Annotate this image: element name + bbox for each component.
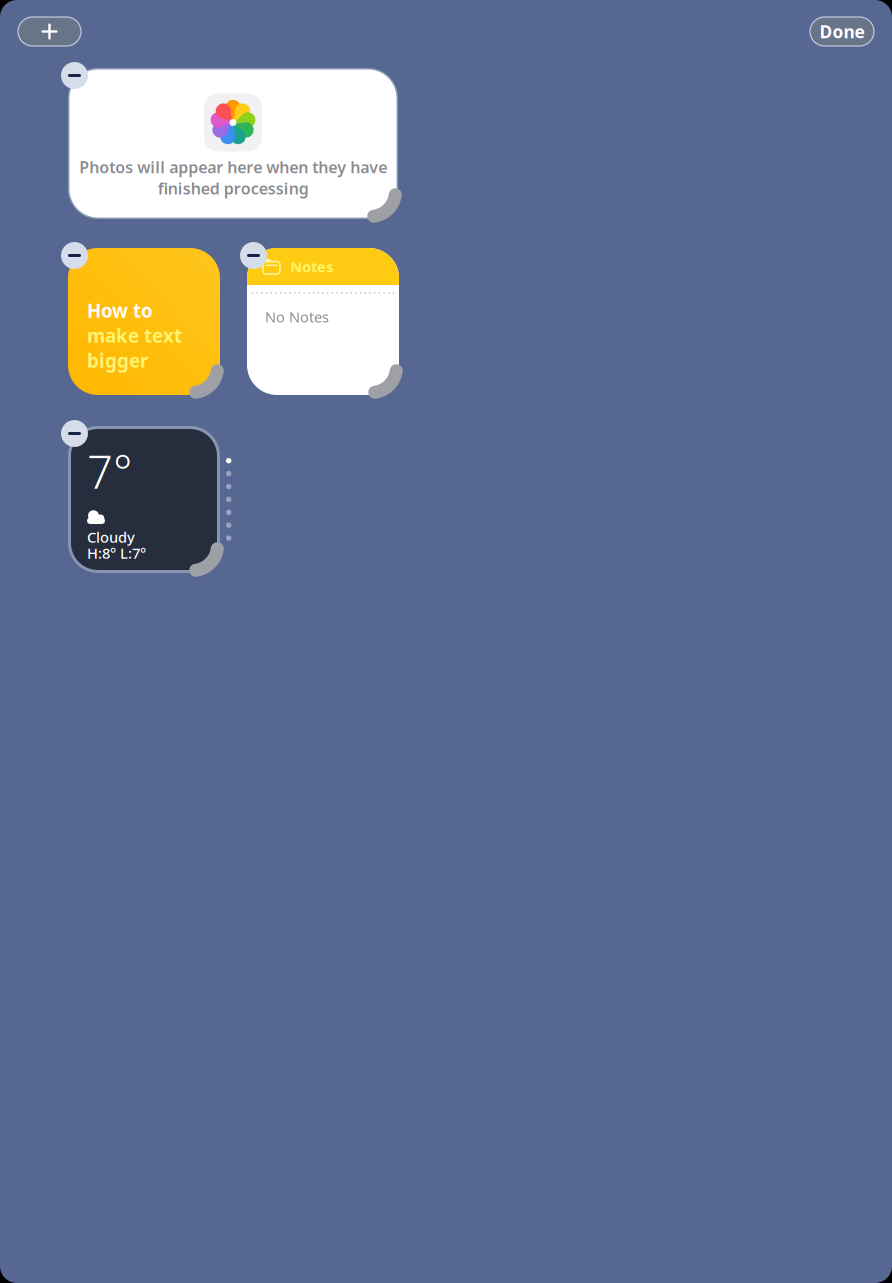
staticText: Notes (290, 257, 333, 276)
button[interactable]: Remove widget (61, 242, 88, 269)
staticText: Done (819, 20, 864, 43)
button[interactable]: Remove widget (61, 62, 88, 89)
button[interactable]: Notes (247, 248, 399, 395)
staticText: make text (87, 323, 182, 348)
button[interactable]: Remove widget (240, 242, 267, 269)
button[interactable]: Photos will appear here when they have f… (68, 68, 398, 219)
staticText: H:8° L:7° (87, 543, 146, 563)
button[interactable]: 7° (68, 426, 220, 573)
button[interactable]: Add widget (18, 17, 81, 46)
button[interactable]: How to (68, 248, 220, 395)
staticText: Cloudy (87, 527, 135, 547)
button[interactable]: Remove widget (61, 420, 88, 447)
staticText: bigger (87, 348, 148, 373)
staticText: 7° (87, 441, 132, 501)
staticText: How to (87, 298, 153, 323)
staticText: No Notes (265, 307, 329, 326)
staticText: Photos will appear here when they have f… (79, 156, 387, 199)
button[interactable]: Done (810, 17, 874, 46)
